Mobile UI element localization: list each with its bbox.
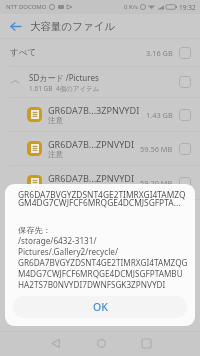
button[interactable]: Home [89,331,114,356]
button[interactable]: Select [179,76,191,88]
button[interactable]: GR6DA7B...ZPNVYDI [0,132,200,165]
staticText: NTT DOCOMO [6,3,47,11]
staticText: 1.61 GB 4個のアイテム [29,84,100,93]
staticText: 注意 [48,184,64,194]
button[interactable]: Back [7,18,23,34]
staticText: OK [93,300,108,314]
staticText: GR6DA7B...ZPNVYDI [48,138,135,150]
button[interactable]: Back [43,331,68,356]
staticText: すべて [10,47,37,58]
staticText: 注意 [48,150,64,160]
button[interactable]: Select [179,47,191,59]
staticText: 注意 [48,116,64,126]
staticText: GR6DA7B...ZPNVYDI [48,172,135,184]
staticText: 大容量のファイル [30,20,116,33]
button[interactable]: GR6DA7B...ZPNVYDI [0,166,200,199]
staticText: 3.16 GB [146,48,173,58]
staticText: 保存先： /storage/6432-3131/ Pictures/.Galle… [18,225,188,291]
button[interactable]: Select [179,177,191,189]
staticText: 19:32 [179,3,196,12]
button[interactable]: Recents [134,331,159,356]
button[interactable]: OK [13,296,187,318]
staticText: 0 K/s [124,3,138,11]
staticText: GR6DA7BVGYZDSNT4GE2TIMRXGI4TAMZQ GM4DG7C… [18,189,186,209]
staticText: GR6DA7B...3ZPNVYDI [48,104,140,116]
button[interactable]: Collapse [9,76,21,88]
button[interactable]: Select [179,109,191,121]
staticText: 59.20 MB [140,178,173,188]
button[interactable]: Select [179,143,191,155]
staticText: 59.56 MB [140,144,173,154]
button[interactable]: GR6DA7B...3ZPNVYDI [0,98,200,131]
staticText: 1.43 GB [146,110,173,120]
staticText: SDカード /Pictures [29,72,99,83]
